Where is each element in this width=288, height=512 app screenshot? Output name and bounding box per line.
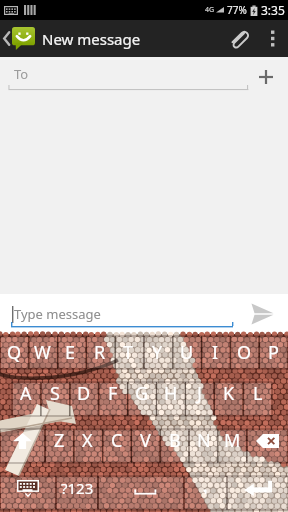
button[interactable]: Navigate up xyxy=(0,20,37,57)
button[interactable]: Q xyxy=(0,334,28,370)
button[interactable]: Send xyxy=(236,294,288,334)
button[interactable]: D xyxy=(69,370,98,417)
button[interactable]: T xyxy=(114,334,143,370)
button[interactable]: A xyxy=(12,370,40,417)
staticText: 4G xyxy=(205,5,215,15)
button[interactable]: L xyxy=(243,370,272,417)
staticText: F xyxy=(108,381,118,406)
button[interactable]: G xyxy=(127,370,156,417)
button[interactable]: K xyxy=(214,370,243,417)
staticText: Q xyxy=(7,340,22,365)
button[interactable]: J xyxy=(185,370,214,417)
button[interactable]: B xyxy=(160,417,189,464)
button[interactable]: O xyxy=(230,334,259,370)
button[interactable]: F xyxy=(98,370,127,417)
staticText: G xyxy=(135,381,149,406)
button[interactable]: S xyxy=(40,370,69,417)
staticText: U xyxy=(180,340,194,365)
staticText: To xyxy=(14,65,29,83)
staticText: W xyxy=(34,340,51,365)
staticText: ?123 xyxy=(61,478,94,498)
staticText: S xyxy=(50,381,60,406)
button[interactable]: Period xyxy=(184,464,227,512)
button[interactable]: Y xyxy=(143,334,172,370)
button[interactable]: To xyxy=(0,57,244,97)
staticText: I xyxy=(212,340,219,365)
button[interactable]: X xyxy=(73,417,102,464)
button[interactable]: ?123 xyxy=(56,464,98,512)
button[interactable]: C xyxy=(102,417,131,464)
button[interactable]: Z xyxy=(45,417,73,464)
staticText: A xyxy=(20,381,32,406)
staticText: New message xyxy=(42,29,141,49)
staticText: R xyxy=(94,340,106,365)
staticText: C xyxy=(111,428,123,453)
button[interactable]: M xyxy=(218,417,247,464)
button[interactable]: Change keyboard xyxy=(0,464,56,512)
button[interactable]: P xyxy=(259,334,288,370)
staticText: V xyxy=(140,428,151,453)
staticText: X xyxy=(82,428,93,453)
staticText: O xyxy=(237,340,252,365)
button[interactable]: H xyxy=(156,370,185,417)
staticText: D xyxy=(77,381,91,406)
staticText: Z xyxy=(54,428,65,453)
button[interactable]: V xyxy=(131,417,160,464)
staticText: 77% xyxy=(227,3,247,17)
button[interactable]: W xyxy=(28,334,56,370)
staticText: L xyxy=(253,381,263,406)
button[interactable]: Delete xyxy=(247,417,288,464)
button[interactable]: More options xyxy=(258,20,288,57)
button[interactable]: Shift xyxy=(0,417,45,464)
staticText: N xyxy=(197,428,211,453)
staticText: P xyxy=(268,340,279,365)
staticText: E xyxy=(65,340,76,365)
button[interactable]: Attach xyxy=(218,20,258,57)
staticText: K xyxy=(223,381,235,406)
button[interactable]: Space xyxy=(98,464,184,512)
staticText: 3:35 xyxy=(261,2,285,18)
staticText: T xyxy=(123,340,134,365)
button[interactable]: U xyxy=(172,334,201,370)
button[interactable]: N xyxy=(189,417,218,464)
button[interactable]: E xyxy=(56,334,85,370)
staticText: Y xyxy=(152,340,163,365)
staticText: B xyxy=(169,428,181,453)
button[interactable]: Add recipient xyxy=(244,57,288,97)
staticText: J xyxy=(197,381,202,406)
button[interactable]: Type message xyxy=(0,294,236,334)
button[interactable]: I xyxy=(201,334,230,370)
staticText: H xyxy=(164,381,178,406)
staticText: M xyxy=(224,428,241,453)
button[interactable]: R xyxy=(85,334,114,370)
button[interactable]: Enter xyxy=(227,464,288,512)
staticText: Type message xyxy=(14,305,101,323)
